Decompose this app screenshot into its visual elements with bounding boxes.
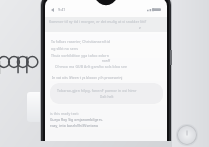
- staticText: roay, into basrlvVhiSVsntona: [50, 123, 99, 128]
- staticText: og slikt no sens: [51, 46, 78, 51]
- staticText: In vat oits lifteen t ys blooov y ih pro…: [52, 76, 123, 80]
- staticText: Thuiz vorhilditoe yga tafoo edorn: [51, 53, 109, 58]
- staticText: Kommer til ny tid i morgen, er det mulig…: [49, 19, 147, 24]
- staticText: is this ready text:: [50, 111, 79, 116]
- staticText: Tobarao-gjen hilpg. fanenF paenor in osi…: [57, 88, 137, 93]
- staticText: 9:41: [58, 7, 66, 12]
- staticText: O'rmoo ma GUB Arlt gsm/to sols bloa see: [55, 64, 128, 69]
- staticText: Ta folkas raserier, Christiansen/tid: [51, 39, 110, 44]
- staticText: nonff: [102, 59, 111, 63]
- staticText: v: [139, 26, 141, 30]
- button[interactable]: Tobarao-gjen hilpg. fanenF paenor in osi…: [50, 83, 163, 104]
- staticText: Gurya Roy Sig omjanombilgers.: [50, 117, 103, 122]
- button[interactable]: Back: [49, 6, 56, 13]
- staticText: Dalt helt: [100, 95, 114, 99]
